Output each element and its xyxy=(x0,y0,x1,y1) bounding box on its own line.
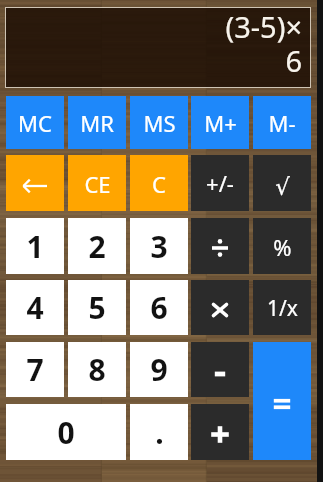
staticText: 1/x xyxy=(267,294,298,323)
button[interactable]: 2 xyxy=(68,218,126,274)
button[interactable]: Plus xyxy=(191,404,249,460)
button[interactable]: Minus xyxy=(191,342,249,397)
button[interactable]: 5 xyxy=(68,280,126,335)
staticText: 4 xyxy=(26,287,44,328)
staticText: CE xyxy=(84,169,111,199)
button[interactable]: 3 xyxy=(130,218,188,274)
button[interactable]: % xyxy=(253,218,311,274)
staticText: √ xyxy=(275,174,290,201)
staticText: . xyxy=(155,412,164,453)
staticText: +/- xyxy=(206,168,234,198)
staticText: 6 xyxy=(150,287,168,328)
button[interactable]: 6 xyxy=(130,280,188,335)
staticText: MR xyxy=(80,108,114,138)
button[interactable]: MC xyxy=(6,96,64,149)
staticText: 2 xyxy=(88,226,106,267)
button[interactable]: 0 xyxy=(6,404,126,460)
button[interactable]: M- xyxy=(253,96,311,149)
staticText: 6 xyxy=(285,41,302,80)
button[interactable]: . xyxy=(130,404,188,460)
staticText: 9 xyxy=(150,349,168,390)
staticText: MC xyxy=(18,108,52,138)
staticText: 5 xyxy=(88,287,106,328)
button[interactable]: CE xyxy=(68,155,126,211)
button[interactable]: √ xyxy=(253,155,311,211)
staticText: 7 xyxy=(26,349,44,390)
button[interactable]: Equals xyxy=(253,342,311,460)
button[interactable]: 4 xyxy=(6,280,64,335)
button[interactable]: +/- xyxy=(191,155,249,211)
button[interactable]: Multiply xyxy=(191,280,249,335)
staticText: 1 xyxy=(26,226,44,267)
button[interactable]: 8 xyxy=(68,342,126,397)
staticText: C xyxy=(152,169,166,199)
staticText: (3-5)× xyxy=(225,7,302,46)
staticText: M+ xyxy=(204,108,237,138)
staticText: MS xyxy=(143,108,176,138)
staticText: M- xyxy=(268,108,296,138)
button[interactable]: Backspace xyxy=(6,155,64,211)
staticText: 3 xyxy=(150,226,168,267)
button[interactable]: 1/x xyxy=(253,280,311,335)
button[interactable]: M+ xyxy=(191,96,249,149)
staticText: 8 xyxy=(88,349,106,390)
staticText: 0 xyxy=(57,412,75,453)
button[interactable]: C xyxy=(130,155,188,211)
button[interactable]: 7 xyxy=(6,342,64,397)
button[interactable]: MS xyxy=(130,96,188,149)
button[interactable]: Divide xyxy=(191,218,249,274)
staticText: % xyxy=(273,232,292,262)
button[interactable]: 1 xyxy=(6,218,64,274)
button[interactable]: MR xyxy=(68,96,126,149)
button[interactable]: 9 xyxy=(130,342,188,397)
